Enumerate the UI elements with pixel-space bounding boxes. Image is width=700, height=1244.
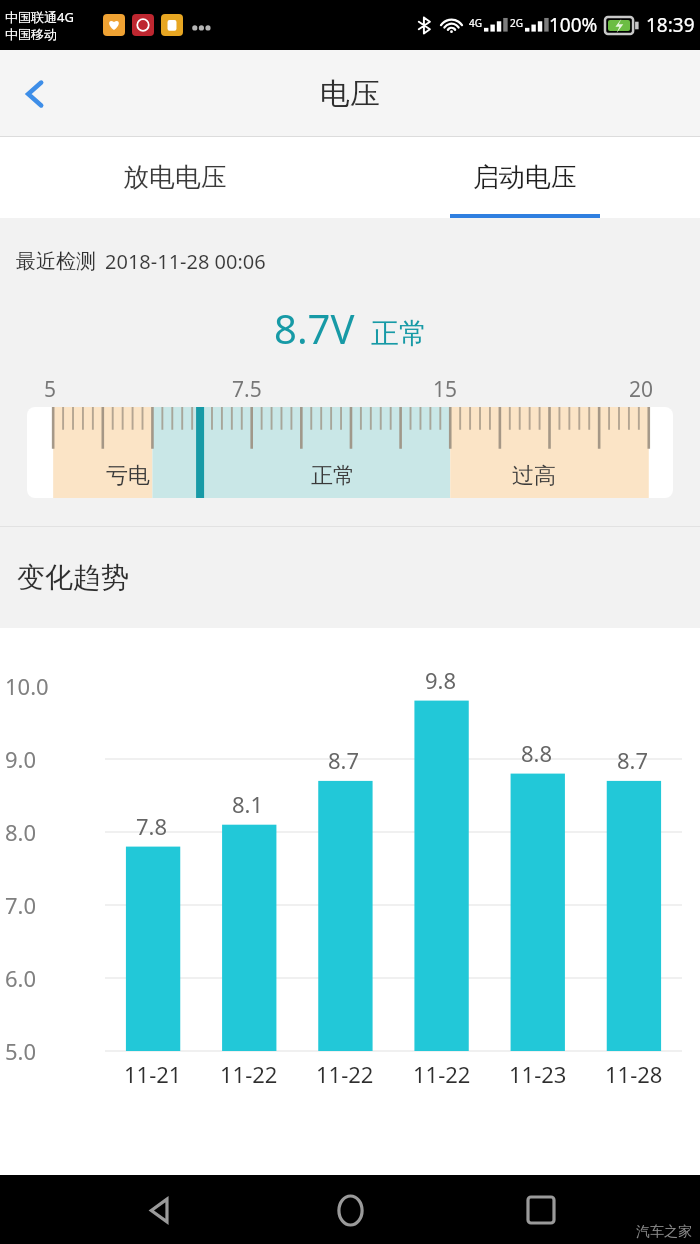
staticText: 100% [549, 12, 598, 38]
staticText: 11-22 [220, 1059, 278, 1089]
staticText: 8.7V [274, 301, 355, 355]
staticText: 汽车之家 [636, 1223, 692, 1241]
staticText: 亏电 [106, 462, 150, 490]
staticText: 2G [510, 16, 523, 30]
button[interactable]: 放电电压 [0, 137, 350, 218]
staticText: 正常 [371, 316, 427, 351]
staticText: 7.5 [232, 375, 262, 403]
staticText: 启动电压 [473, 161, 577, 194]
staticText: 9.8 [425, 665, 457, 695]
staticText: 放电电压 [123, 161, 227, 194]
staticText: 电压 [320, 75, 380, 113]
staticText: 11-23 [509, 1059, 567, 1089]
staticText: 20 [629, 375, 654, 403]
staticText: 11-28 [605, 1059, 663, 1089]
staticText: 10.0 [5, 671, 49, 701]
button[interactable]: 启动电压 [350, 137, 700, 218]
staticText: 中国联通4G [5, 8, 74, 26]
button[interactable]: Home [319, 1179, 381, 1241]
staticText: 7.8 [136, 811, 168, 841]
staticText: 最近检测 [16, 249, 96, 274]
staticText: 9.0 [5, 744, 37, 774]
staticText: 18:39 [646, 12, 695, 38]
staticText: 过高 [512, 462, 556, 490]
staticText: 11-22 [413, 1059, 471, 1089]
staticText: 11-22 [316, 1059, 374, 1089]
staticText: 5.0 [5, 1036, 37, 1066]
staticText: 8.8 [521, 738, 553, 768]
staticText: 正常 [311, 462, 355, 490]
staticText: 15 [433, 375, 458, 403]
staticText: 8.1 [232, 789, 264, 819]
staticText: 中国移动 [5, 26, 57, 42]
button[interactable]: Back [0, 50, 72, 137]
staticText: 5 [44, 375, 57, 403]
staticText: 8.7 [328, 745, 360, 775]
button[interactable]: Recent apps [510, 1179, 572, 1241]
staticText: 11-21 [124, 1059, 182, 1089]
staticText: 变化趋势 [17, 560, 129, 595]
button[interactable]: Back [129, 1179, 191, 1241]
staticText: 8.0 [5, 817, 37, 847]
staticText: 2018-11-28 00:06 [105, 248, 266, 275]
staticText: 6.0 [5, 963, 37, 993]
staticText: 7.0 [5, 890, 37, 920]
staticText: 4G [469, 16, 482, 30]
staticText: 8.7 [617, 745, 649, 775]
